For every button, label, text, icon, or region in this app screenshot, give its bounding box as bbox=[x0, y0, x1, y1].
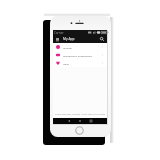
staticText: Interactions notifications bbox=[63, 54, 93, 57]
button[interactable]: Home bbox=[77, 118, 83, 124]
staticText: My App bbox=[63, 37, 75, 41]
button[interactable]: Search bbox=[98, 35, 106, 43]
button[interactable]: Back bbox=[66, 118, 72, 124]
button[interactable]: Interactions notifications bbox=[53, 51, 107, 59]
staticText: Carrier bbox=[54, 31, 64, 35]
staticText: Hello bbox=[63, 62, 70, 65]
button[interactable]: Hello bbox=[53, 59, 107, 67]
button[interactable]: Manual bbox=[53, 43, 107, 51]
button[interactable]: Recent apps bbox=[88, 118, 94, 124]
staticText: Some little text, version 10 on date 01/… bbox=[55, 113, 106, 116]
button[interactable]: Open navigation menu bbox=[55, 35, 60, 43]
staticText: Manual bbox=[63, 46, 72, 49]
